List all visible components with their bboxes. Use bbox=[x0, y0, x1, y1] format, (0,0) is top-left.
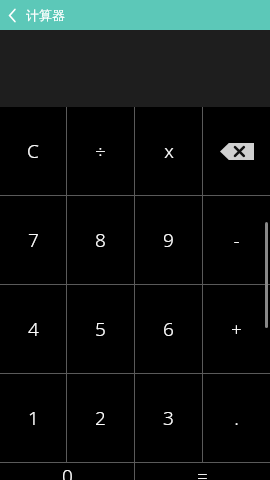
staticText: = bbox=[197, 463, 208, 480]
button[interactable]: 1 bbox=[0, 374, 66, 462]
staticText: 9 bbox=[163, 227, 174, 253]
button[interactable]: 6 bbox=[135, 285, 202, 373]
button[interactable]: Back bbox=[0, 0, 75, 30]
button[interactable]: = bbox=[135, 463, 270, 480]
staticText: 6 bbox=[163, 316, 174, 342]
staticText: x bbox=[164, 138, 174, 164]
button[interactable]: 3 bbox=[135, 374, 202, 462]
staticText: 0 bbox=[62, 463, 73, 480]
staticText: 3 bbox=[163, 405, 174, 431]
button[interactable]: 8 bbox=[67, 196, 134, 284]
staticText: 1 bbox=[28, 405, 39, 431]
button[interactable]: Backspace bbox=[203, 107, 270, 195]
staticText: ÷ bbox=[95, 138, 106, 164]
button[interactable]: 2 bbox=[67, 374, 134, 462]
button[interactable]: 0 bbox=[0, 463, 134, 480]
staticText: + bbox=[231, 316, 242, 342]
staticText: 计算器 bbox=[26, 7, 65, 23]
staticText: 4 bbox=[28, 316, 39, 342]
staticText: 8 bbox=[95, 227, 106, 253]
button[interactable]: C bbox=[0, 107, 66, 195]
other: Back bbox=[7, 8, 18, 23]
staticText: 5 bbox=[95, 316, 106, 342]
button[interactable]: - bbox=[203, 196, 270, 284]
staticText: . bbox=[234, 405, 239, 431]
button[interactable]: . bbox=[203, 374, 270, 462]
staticText: C bbox=[27, 138, 39, 164]
button[interactable]: ÷ bbox=[67, 107, 134, 195]
staticText: 2 bbox=[95, 405, 106, 431]
button[interactable]: 5 bbox=[67, 285, 134, 373]
button[interactable]: 9 bbox=[135, 196, 202, 284]
button[interactable]: x bbox=[135, 107, 202, 195]
staticText: 7 bbox=[28, 227, 39, 253]
staticText: - bbox=[233, 227, 240, 253]
button[interactable]: 4 bbox=[0, 285, 66, 373]
button[interactable]: 7 bbox=[0, 196, 66, 284]
button[interactable]: + bbox=[203, 285, 270, 373]
